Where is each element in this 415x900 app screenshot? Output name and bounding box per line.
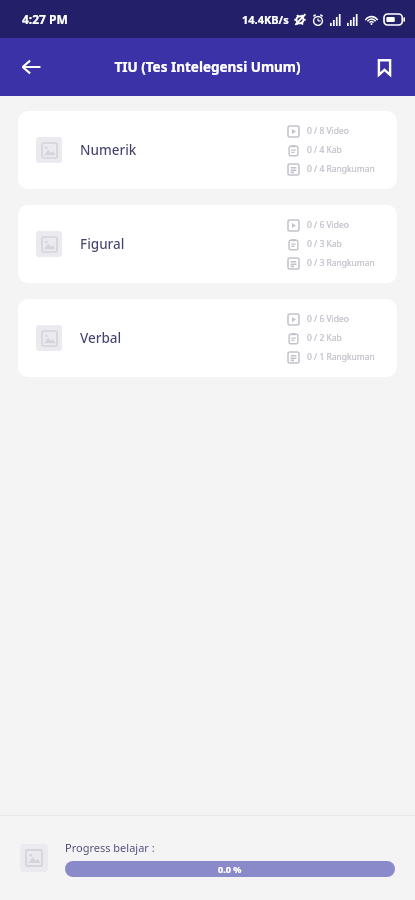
- staticText: 0 / 6 Video: [307, 313, 349, 325]
- staticText: TIU (Tes Intelegensi Umum): [114, 58, 301, 76]
- staticText: 0 / 6 Video: [307, 219, 349, 231]
- staticText: 0 / 8 Video: [307, 125, 349, 137]
- staticText: 0 / 1 Rangkuman: [307, 351, 375, 363]
- staticText: 4:27 PM: [22, 11, 68, 27]
- staticText: 0 / 2 Kab: [307, 332, 342, 344]
- staticText: Progress belajar :: [65, 840, 155, 855]
- staticText: 0 / 3 Rangkuman: [307, 257, 375, 269]
- staticText: 0 / 3 Kab: [307, 238, 342, 250]
- staticText: Numerik: [80, 141, 137, 159]
- button[interactable]: Verbal: [18, 299, 397, 377]
- button[interactable]: Figural: [18, 205, 397, 283]
- staticText: 0 / 4 Kab: [307, 144, 342, 156]
- button[interactable]: Learning progress 0.0 percent: [65, 861, 395, 877]
- staticText: Verbal: [80, 329, 122, 347]
- staticText: 14.4KB/s: [242, 12, 289, 27]
- button[interactable]: Numerik: [18, 111, 397, 189]
- staticText: 0.0 %: [218, 863, 242, 875]
- button[interactable]: Back: [8, 44, 54, 90]
- button[interactable]: Bookmark: [361, 44, 407, 90]
- staticText: 0 / 4 Rangkuman: [307, 163, 375, 175]
- staticText: Figural: [80, 235, 125, 253]
